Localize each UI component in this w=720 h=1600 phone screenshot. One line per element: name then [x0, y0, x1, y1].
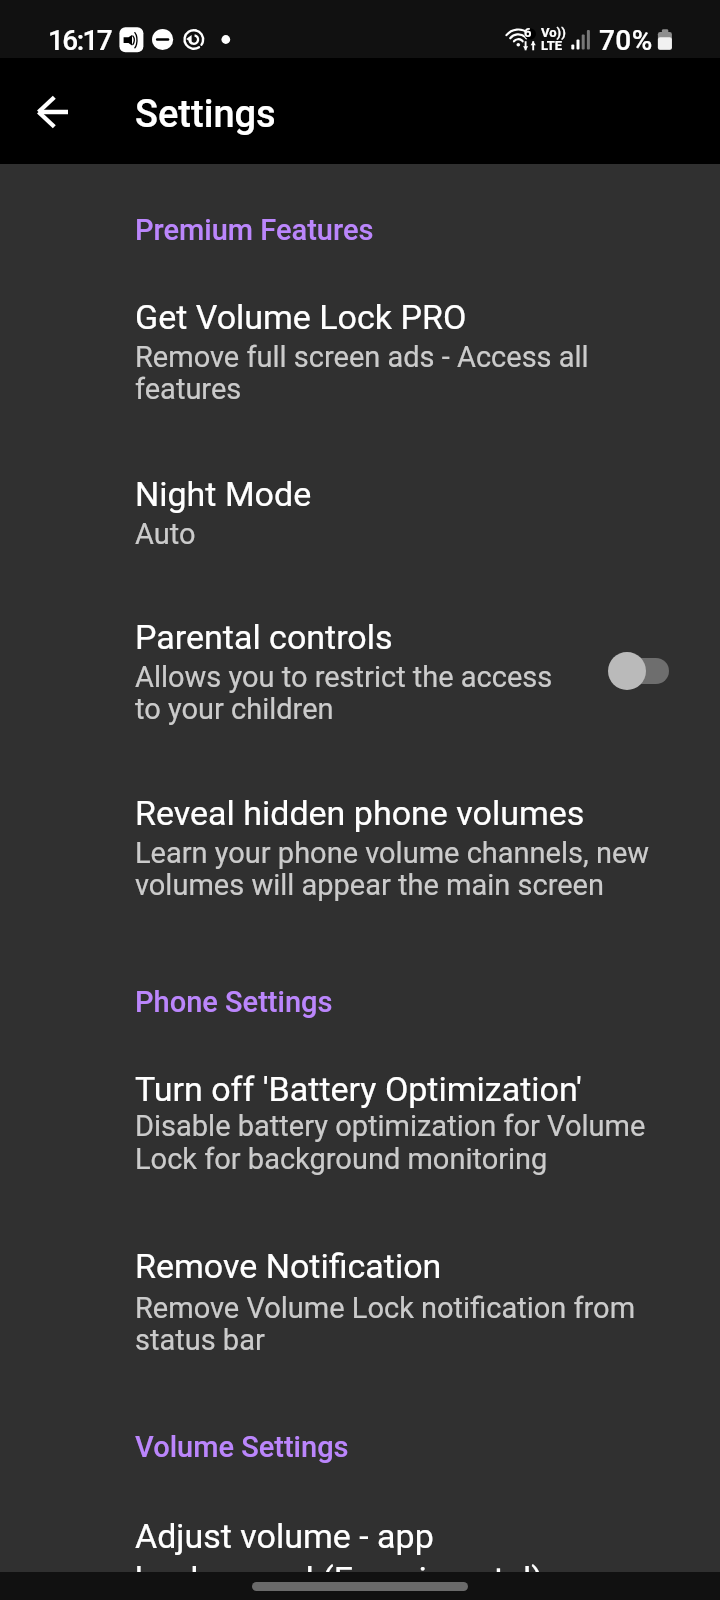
staticText: 16:17 — [48, 23, 112, 57]
staticText: Adjust volume - app background (Experime… — [135, 1514, 555, 1600]
staticText: Remove Notification — [135, 1247, 720, 1286]
staticText: Remove Volume Lock notification from sta… — [135, 1293, 665, 1357]
button[interactable]: Reveal hidden phone volumes — [0, 764, 720, 914]
button[interactable]: Get Volume Lock PRO — [0, 268, 720, 416]
button[interactable]: Back — [29, 88, 77, 136]
staticText: Premium Features — [135, 214, 720, 247]
staticText: Get Volume Lock PRO — [135, 298, 720, 337]
staticText: Disable battery optimization for Volume … — [135, 1110, 675, 1176]
button[interactable]: Adjust volume - app background (Experime… — [0, 1486, 720, 1600]
staticText: Remove full screen ads - Access all feat… — [135, 342, 655, 406]
staticText: Turn off 'Battery Optimization' — [135, 1070, 720, 1109]
button[interactable]: Remove Notification — [0, 1218, 720, 1370]
staticText: Vo)) — [541, 26, 566, 40]
staticText: 6 — [524, 26, 532, 40]
staticText: Reveal hidden phone volumes — [135, 794, 720, 833]
staticText: Parental controls — [135, 618, 720, 657]
staticText: Phone Settings — [135, 986, 720, 1019]
button[interactable]: Turn off 'Battery Optimization' — [0, 1040, 720, 1192]
staticText: Auto — [135, 519, 720, 551]
staticText: Learn your phone volume channels, new vo… — [135, 838, 675, 902]
staticText: Night Mode — [135, 475, 720, 514]
staticText: Volume Settings — [135, 1431, 720, 1464]
staticText: Allows you to restrict the access to you… — [135, 662, 595, 726]
button[interactable]: Parental controls — [0, 588, 720, 738]
staticText: 70% — [599, 23, 653, 57]
staticText: LTE — [541, 39, 563, 53]
button[interactable]: Night Mode — [0, 444, 720, 564]
staticText: Settings — [135, 89, 276, 137]
button[interactable]: Parental controls toggle — [596, 641, 680, 703]
